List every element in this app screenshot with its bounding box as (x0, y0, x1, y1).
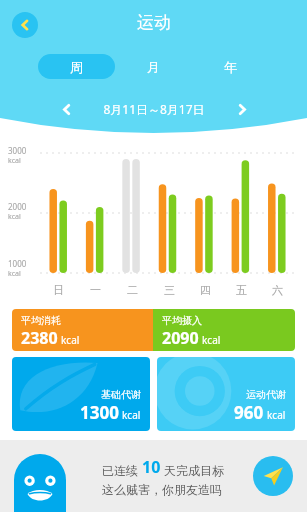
button[interactable]: Previous week (53, 96, 79, 122)
staticText: 六 (272, 283, 283, 297)
button[interactable]: 年 (192, 54, 269, 79)
staticText: 周 (70, 59, 83, 75)
button[interactable]: 平均消耗 (12, 309, 153, 351)
button[interactable]: Share (253, 456, 293, 496)
staticText: 年 (224, 59, 237, 75)
staticText: 已连续 (102, 462, 142, 478)
staticText: 四 (200, 283, 211, 297)
staticText: 三 (164, 283, 175, 297)
staticText: kcal (61, 333, 80, 347)
staticText: kcal (8, 269, 21, 279)
staticText: 一 (90, 283, 101, 297)
staticText: 2090 (162, 327, 199, 349)
staticText: 二 (127, 283, 138, 297)
staticText: 平均消耗 (21, 314, 61, 327)
staticText: 平均摄入 (162, 314, 202, 327)
staticText: 天完成目标 (161, 462, 225, 478)
button[interactable]: 运动代谢 (157, 357, 295, 431)
staticText: kcal (122, 408, 141, 422)
staticText: 3000 (8, 145, 27, 156)
staticText: 2000 (8, 201, 27, 212)
staticText: 960 (234, 401, 264, 424)
staticText: 基础代谢 (101, 388, 141, 401)
button[interactable]: 月 (115, 54, 192, 79)
staticText: 2380 (21, 327, 58, 349)
staticText: 1000 (8, 258, 27, 269)
staticText: 月 (147, 59, 160, 75)
button[interactable]: Back (12, 12, 38, 38)
staticText: kcal (267, 408, 286, 422)
button[interactable]: 平均摄入 (153, 309, 295, 351)
staticText: 运动代谢 (246, 388, 286, 401)
staticText: 五 (236, 283, 247, 297)
staticText: kcal (202, 333, 221, 347)
button[interactable]: 周 (38, 54, 115, 79)
staticText: 日 (53, 283, 64, 297)
staticText: 1300 (80, 401, 119, 424)
button[interactable]: Next week (229, 96, 255, 122)
button[interactable]: 基础代谢 (12, 357, 150, 431)
staticText: 10 (142, 456, 161, 478)
staticText: kcal (8, 212, 21, 222)
staticText: 这么贼害，你朋友造吗 (102, 482, 222, 497)
staticText: 运动 (137, 12, 171, 33)
staticText: 8月11日～8月17日 (103, 101, 205, 117)
staticText: kcal (8, 156, 21, 166)
